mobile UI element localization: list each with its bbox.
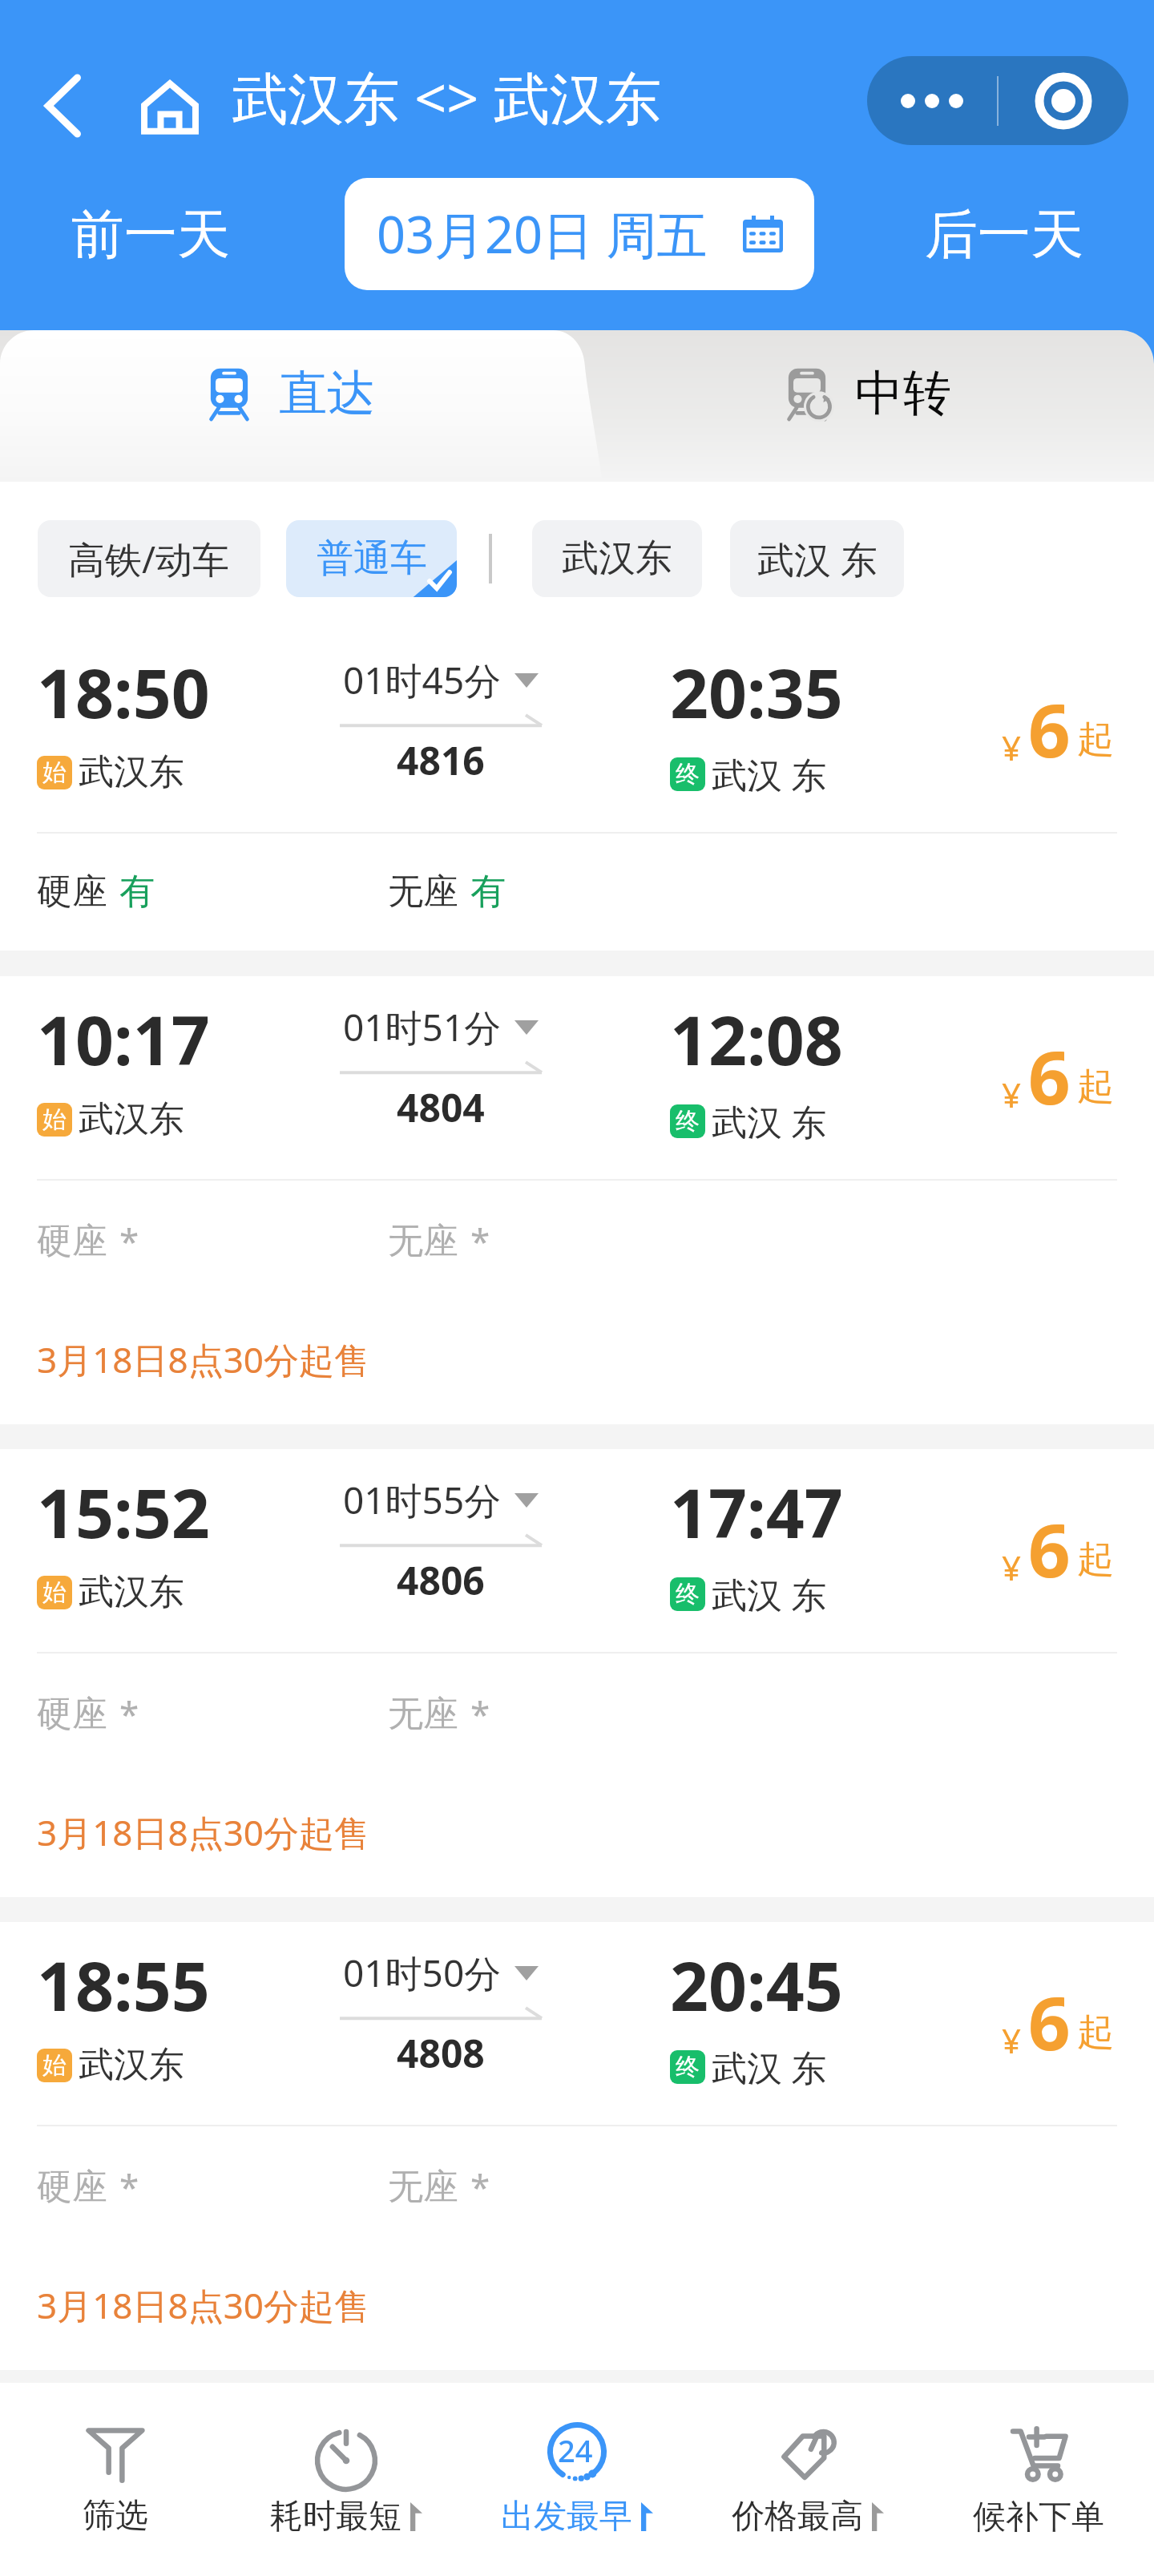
staticText: 普通车: [317, 535, 427, 582]
staticText: *: [119, 1690, 139, 1738]
button[interactable]: 高铁/动车: [38, 520, 260, 597]
button[interactable]: 后一天: [845, 178, 1154, 290]
staticText: 武汉东: [79, 1097, 184, 1141]
staticText: ¥: [1002, 2017, 1022, 2063]
staticText: 始: [42, 1577, 67, 1608]
staticText: 武汉东 <> 武汉东: [232, 59, 662, 135]
staticText: 起: [1077, 1064, 1114, 1110]
staticText: 无座: [388, 2165, 458, 2209]
button[interactable]: 15:52: [0, 1449, 1154, 1897]
staticText: 硬座: [37, 1219, 107, 1263]
staticText: 有: [470, 870, 506, 914]
staticText: 12:08: [670, 993, 843, 1084]
button[interactable]: More options: [867, 56, 997, 145]
staticText: 20:35: [670, 646, 843, 737]
staticText: 4806: [397, 1554, 485, 1606]
staticText: 01时50分: [343, 1948, 502, 1998]
staticText: 武汉东: [79, 2043, 184, 2087]
button[interactable]: 前一天: [0, 178, 301, 290]
staticText: 武汉 东: [712, 1097, 827, 1145]
button[interactable]: Close mini program: [999, 56, 1128, 145]
staticText: *: [119, 1217, 139, 1265]
staticText: 无座: [388, 1692, 458, 1736]
staticText: 武汉 东: [712, 750, 827, 798]
staticText: 武汉东: [79, 750, 184, 794]
staticText: 直达: [279, 363, 375, 424]
button[interactable]: Home: [135, 72, 205, 143]
staticText: 起: [1077, 2009, 1114, 2056]
staticText: 15:52: [37, 1466, 210, 1557]
staticText: *: [470, 2162, 490, 2211]
staticText: 10:17: [37, 993, 210, 1084]
staticText: 出发最早: [501, 2496, 632, 2538]
staticText: *: [470, 1217, 490, 1265]
staticText: 20:45: [670, 1939, 843, 2030]
button[interactable]: 18:50: [0, 629, 1154, 951]
button[interactable]: 武汉东: [532, 520, 702, 597]
staticText: 耗时最短: [270, 2496, 401, 2538]
staticText: 武汉 东: [712, 2043, 827, 2091]
button[interactable]: 筛选: [0, 2383, 231, 2574]
staticText: 始: [42, 2050, 67, 2081]
staticText: 始: [42, 1104, 67, 1135]
staticText: 6: [1028, 679, 1071, 779]
staticText: 3月18日8点30分起售: [37, 1335, 370, 1383]
button[interactable]: 武汉 东: [730, 520, 904, 597]
staticText: 武汉东: [562, 535, 672, 582]
staticText: 武汉 东: [757, 534, 878, 584]
button[interactable]: Back: [27, 71, 98, 141]
button[interactable]: 中转: [577, 330, 1154, 482]
staticText: 01时55分: [343, 1475, 502, 1525]
button[interactable]: 03月20日 周五: [345, 178, 814, 290]
staticText: 终: [676, 1579, 700, 1609]
staticText: ¥: [1002, 1544, 1022, 1590]
staticText: 起: [1077, 1536, 1114, 1583]
staticText: 6: [1028, 1972, 1071, 2072]
staticText: 终: [676, 759, 700, 789]
button[interactable]: 24: [462, 2383, 692, 2574]
staticText: 3月18日8点30分起售: [37, 1808, 370, 1856]
staticText: 无座: [388, 1219, 458, 1263]
button[interactable]: 10:17: [0, 976, 1154, 1424]
staticText: 18:50: [37, 646, 210, 737]
staticText: 6: [1028, 1026, 1071, 1126]
staticText: 01时45分: [343, 655, 502, 705]
staticText: 17:47: [670, 1466, 843, 1557]
staticText: ¥: [1002, 1072, 1022, 1117]
staticText: 4804: [397, 1081, 485, 1133]
button[interactable]: 候补下单: [923, 2383, 1154, 2574]
staticText: 武汉东: [79, 1570, 184, 1614]
staticText: 后一天: [925, 201, 1083, 268]
staticText: 筛选: [83, 2495, 148, 2537]
button[interactable]: 18:55: [0, 1922, 1154, 2370]
staticText: *: [470, 1690, 490, 1738]
staticText: 起: [1077, 717, 1114, 763]
button[interactable]: 价格最高: [692, 2383, 923, 2574]
staticText: 无座: [388, 870, 458, 914]
staticText: 6: [1028, 1499, 1071, 1599]
staticText: 4808: [397, 2027, 485, 2079]
staticText: 候补下单: [973, 2497, 1104, 2538]
staticText: 硬座: [37, 870, 107, 914]
staticText: 03月20日 周五: [377, 200, 708, 269]
button[interactable]: 普通车: [286, 520, 457, 597]
staticText: 始: [42, 757, 67, 788]
staticText: ¥: [1002, 725, 1022, 770]
staticText: 18:55: [37, 1939, 210, 2030]
staticText: 4816: [397, 734, 485, 786]
staticText: 价格最高: [732, 2496, 863, 2538]
staticText: 武汉 东: [712, 1570, 827, 1618]
staticText: 有: [119, 870, 155, 914]
button[interactable]: 直达: [0, 330, 577, 482]
staticText: 中转: [855, 363, 951, 424]
button[interactable]: 耗时最短: [231, 2383, 462, 2574]
staticText: 终: [676, 2052, 700, 2082]
staticText: 终: [676, 1106, 700, 1137]
staticText: 高铁/动车: [68, 534, 230, 584]
staticText: *: [119, 2162, 139, 2211]
staticText: 硬座: [37, 1692, 107, 1736]
staticText: 01时51分: [343, 1002, 502, 1052]
staticText: 硬座: [37, 2165, 107, 2209]
staticText: 前一天: [71, 201, 230, 268]
staticText: 3月18日8点30分起售: [37, 2281, 370, 2329]
